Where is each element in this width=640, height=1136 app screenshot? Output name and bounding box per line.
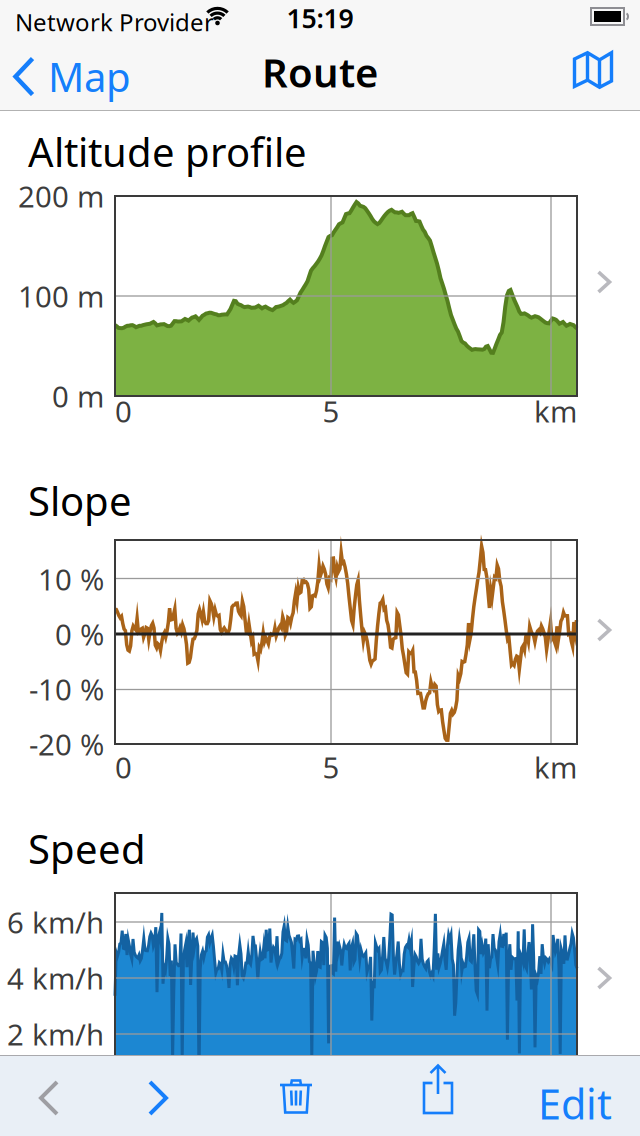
staticText: 200 m xyxy=(18,176,104,215)
staticText: 5 xyxy=(322,391,339,430)
button[interactable]: Previous xyxy=(38,1081,60,1115)
button[interactable]: Next xyxy=(147,1081,169,1115)
button[interactable]: Speed xyxy=(0,816,640,1055)
button[interactable]: Delete xyxy=(279,1077,313,1117)
staticText: 15:19 xyxy=(286,0,353,36)
staticText: Edit xyxy=(538,1076,612,1131)
staticText: Network Provider xyxy=(15,6,214,38)
staticText: 5 xyxy=(322,747,339,786)
staticText: 0 m xyxy=(52,376,104,415)
staticText: 2 km/h xyxy=(7,1014,104,1053)
staticText: Altitude profile xyxy=(28,125,307,178)
button[interactable]: Share xyxy=(422,1068,454,1110)
staticText: -10 % xyxy=(29,669,104,708)
staticText: 0 xyxy=(115,391,132,430)
staticText: 4 km/h xyxy=(7,958,104,997)
staticText: Speed xyxy=(28,822,146,875)
staticText: 6 km/h xyxy=(7,902,104,941)
staticText: Route xyxy=(262,45,378,98)
staticText: -20 % xyxy=(29,724,104,763)
button[interactable]: Map xyxy=(14,50,131,103)
button[interactable]: Altitude profile xyxy=(0,120,640,432)
button[interactable]: Map view xyxy=(573,51,613,89)
button[interactable]: Slope xyxy=(0,468,640,788)
staticText: 10 % xyxy=(38,559,104,598)
staticText: Map xyxy=(48,50,131,103)
button[interactable]: Edit xyxy=(482,1076,612,1131)
staticText: km xyxy=(534,391,577,430)
staticText: 0 % xyxy=(55,614,104,653)
staticText: 0 xyxy=(115,747,132,786)
staticText: 100 m xyxy=(18,276,104,315)
staticText: km xyxy=(534,747,577,786)
staticText: Slope xyxy=(28,474,132,527)
